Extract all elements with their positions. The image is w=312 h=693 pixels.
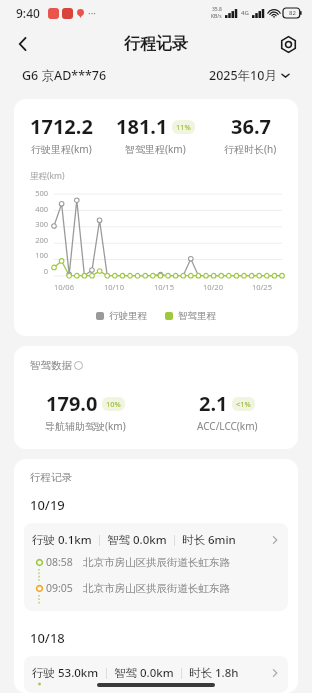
staticText: 100 [26, 250, 48, 260]
staticText: 400 [26, 204, 48, 214]
staticText: 35.8 [212, 6, 222, 13]
staticText: 181.1 [116, 113, 168, 140]
staticText: 10% [106, 399, 121, 409]
staticText: 4G [241, 9, 249, 17]
staticText: 10/25 [252, 282, 272, 292]
button[interactable]: Back [6, 27, 40, 61]
staticText: 行程记录 [30, 471, 72, 484]
staticText: 2025年10月 [209, 67, 277, 84]
staticText: 10/19 [30, 496, 65, 514]
staticText: 1712.2 [30, 113, 93, 140]
button[interactable]: 行驶 0.1km [24, 523, 288, 611]
staticText: 行驶 0.1km [32, 532, 92, 548]
staticText: 0 [26, 266, 48, 276]
staticText: 行驶里程 [109, 310, 147, 322]
staticText: 智驾 0.0km [107, 532, 167, 548]
staticText: 10/18 [30, 629, 65, 647]
staticText: 智驾里程 [178, 310, 216, 322]
staticText: 智驾数据 [30, 359, 72, 372]
staticText: 智驾 0.0km [114, 665, 174, 681]
staticText: 09:05 [46, 581, 73, 595]
staticText: ACC/LCC(km) [197, 419, 258, 433]
staticText: 11% [176, 122, 191, 132]
staticText: 行驶 53.0km [32, 665, 99, 681]
staticText: 9:40 [16, 5, 40, 21]
staticText: 行程记录 [124, 34, 188, 54]
staticText: 行驶里程(km) [31, 142, 92, 156]
button[interactable]: Settings [272, 28, 304, 60]
button[interactable]: 行驶 53.0km [24, 656, 288, 693]
staticText: 36.7 [231, 113, 271, 140]
button[interactable]: 2025年10月 [209, 67, 290, 84]
staticText: 10/15 [154, 282, 174, 292]
staticText: 08:58 [46, 555, 73, 569]
staticText: KB/s [211, 13, 222, 20]
staticText: ··· [88, 6, 97, 20]
staticText: 导航辅助驾驶(km) [45, 419, 126, 433]
staticText: 2.1 [199, 390, 228, 417]
staticText: 82 [289, 9, 296, 17]
staticText: 时长 6min [182, 532, 236, 548]
staticText: 北京市房山区拱辰街道长虹东路 [83, 556, 230, 569]
staticText: 北京市房山区拱辰街道长虹东路 [83, 582, 230, 595]
staticText: 500 [26, 188, 48, 198]
staticText: 10/10 [104, 282, 124, 292]
staticText: 179.0 [46, 390, 98, 417]
staticText: 300 [26, 219, 48, 229]
staticText: 10/06 [54, 282, 74, 292]
staticText: <1% [236, 399, 251, 409]
staticText: 时长 1.8h [189, 665, 239, 681]
staticText: 10/20 [203, 282, 223, 292]
staticText: 智驾里程(km) [125, 142, 186, 156]
staticText: 里程(km) [30, 170, 65, 182]
staticText: G6 京AD***76 [22, 67, 107, 84]
staticText: 行程时长(h) [224, 142, 277, 156]
staticText: 200 [26, 235, 48, 245]
